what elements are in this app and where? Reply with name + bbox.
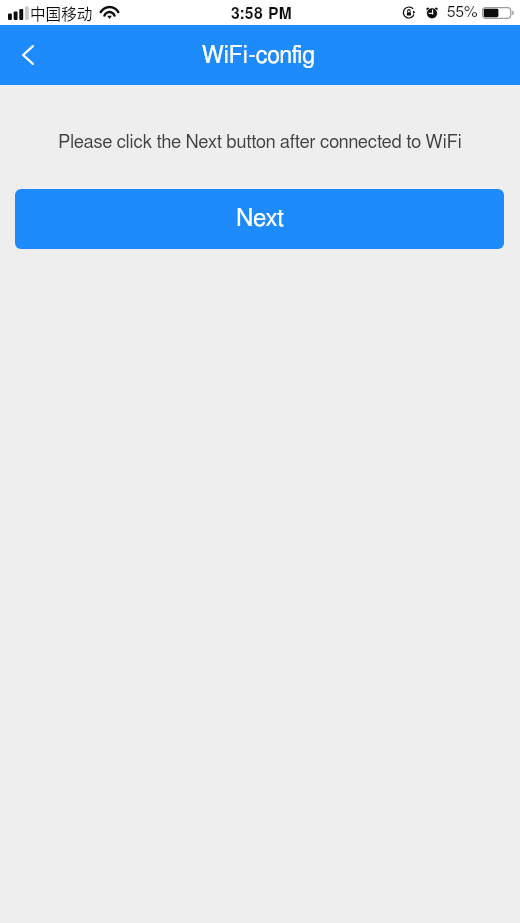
- staticText: 55%: [447, 5, 478, 20]
- staticText: Please click the Next button after conne…: [0, 133, 520, 151]
- staticText: WiFi-config: [202, 44, 316, 67]
- staticText: 3:58 PM: [231, 7, 293, 23]
- button[interactable]: Back: [10, 30, 46, 80]
- staticText: 中国移动: [30, 2, 93, 25]
- staticText: Next: [236, 207, 284, 231]
- button[interactable]: Next: [15, 189, 504, 249]
